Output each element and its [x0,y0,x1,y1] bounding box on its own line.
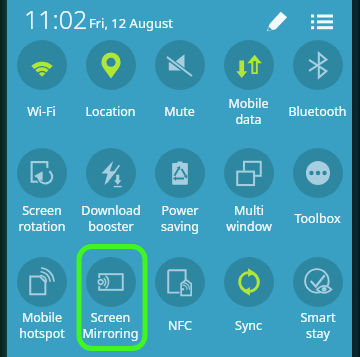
staticText: Multi window [226,202,272,235]
staticText: Bluetooth [288,103,347,120]
staticText: Mobile data [228,95,269,128]
button[interactable]: Mobile data [214,40,283,132]
staticText: NFC [168,317,192,334]
button[interactable]: Screen Mirroring [76,257,145,343]
button[interactable]: Mute [145,40,214,132]
button[interactable]: Location [76,40,145,132]
staticText: Sync [235,317,262,334]
button[interactable]: Edit quick settings [260,4,293,37]
button[interactable]: Download booster [76,148,145,238]
button[interactable]: Multi window [214,148,283,238]
button[interactable]: NFC [145,257,214,343]
button[interactable]: Sync [214,257,283,343]
staticText: Mute [164,103,195,120]
staticText: Wi-Fi [27,103,56,120]
staticText: Fri, 12 August [89,14,173,32]
button[interactable]: Show list view [305,4,338,37]
button[interactable]: Bluetooth [283,40,352,132]
button[interactable]: Wi-Fi [7,40,76,132]
staticText: Location [85,103,136,120]
staticText: Toolbox [294,210,341,227]
staticText: Mobile hotspot [19,309,65,342]
staticText: Screen Mirroring [82,309,139,342]
staticText: Download booster [81,202,141,235]
button[interactable]: Smart stay [283,257,352,343]
button[interactable]: Mobile hotspot [7,257,76,343]
button[interactable]: Power saving [145,148,214,238]
staticText: Power saving [161,202,199,235]
button[interactable]: Toolbox [283,148,352,238]
staticText: 11:02 [24,2,88,36]
staticText: Smart stay [300,309,336,342]
button[interactable]: Screen rotation [7,148,76,238]
staticText: Screen rotation [18,202,66,235]
